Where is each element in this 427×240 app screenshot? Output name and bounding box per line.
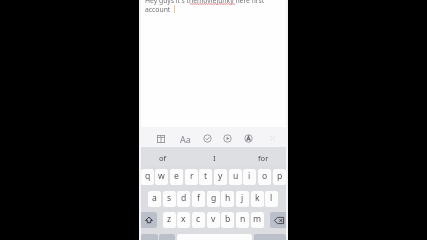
- button[interactable]: Play: [221, 132, 234, 145]
- button[interactable]: d: [177, 191, 190, 207]
- button[interactable]: u: [229, 169, 242, 185]
- button[interactable]: z: [163, 212, 176, 228]
- button[interactable]: Numbers: [141, 234, 158, 240]
- staticText: b: [225, 213, 231, 225]
- button[interactable]: r: [185, 169, 198, 185]
- button[interactable]: h: [221, 191, 234, 207]
- button[interactable]: o: [258, 169, 271, 185]
- button[interactable]: of: [147, 147, 179, 166]
- button[interactable]: j: [236, 191, 249, 207]
- staticText: z: [167, 213, 172, 225]
- button[interactable]: k: [251, 191, 264, 207]
- staticText: o: [262, 170, 268, 182]
- staticText: v: [211, 213, 216, 225]
- button[interactable]: Table: [154, 132, 167, 145]
- staticText: of: [159, 153, 167, 163]
- staticText: g: [211, 192, 217, 204]
- button[interactable]: f: [192, 191, 205, 207]
- staticText: e: [174, 170, 179, 182]
- button[interactable]: Emoji: [159, 234, 175, 240]
- button[interactable]: n: [236, 212, 249, 228]
- staticText: h: [225, 192, 231, 204]
- staticText: for: [258, 153, 269, 163]
- staticText: a: [152, 192, 157, 204]
- button[interactable]: Check: [201, 132, 214, 145]
- button[interactable]: m: [251, 212, 264, 228]
- staticText: r: [190, 170, 194, 182]
- staticText: account: [145, 5, 171, 14]
- button[interactable]: q: [141, 169, 154, 185]
- button[interactable]: g: [207, 191, 220, 207]
- button[interactable]: Backspace: [270, 212, 287, 228]
- staticText: m: [253, 213, 262, 225]
- staticText: Hey guys it's themoviejunky here first: [145, 0, 265, 5]
- button[interactable]: t: [199, 169, 212, 185]
- staticText: y: [218, 170, 223, 182]
- button[interactable]: for: [247, 147, 279, 166]
- staticText: u: [233, 170, 239, 182]
- button[interactable]: Aa: [179, 131, 191, 146]
- staticText: n: [240, 213, 246, 225]
- button[interactable]: c: [192, 212, 205, 228]
- staticText: c: [196, 213, 201, 225]
- staticText: f: [197, 192, 200, 204]
- button[interactable]: x: [177, 212, 190, 228]
- button[interactable]: l: [265, 191, 278, 207]
- staticText: q: [145, 170, 151, 182]
- staticText: l: [270, 192, 273, 204]
- button[interactable]: y: [214, 169, 227, 185]
- button[interactable]: i: [243, 169, 256, 185]
- button[interactable]: Annotate: [242, 132, 255, 145]
- staticText: I: [213, 153, 216, 163]
- staticText: t: [204, 170, 208, 182]
- staticText: w: [158, 170, 165, 182]
- staticText: Aa: [180, 133, 191, 145]
- staticText: j: [241, 192, 244, 204]
- staticText: p: [277, 170, 283, 182]
- button[interactable]: I: [198, 147, 230, 166]
- staticText: i: [248, 170, 251, 182]
- button[interactable]: Return: [254, 234, 286, 240]
- staticText: x: [181, 213, 186, 225]
- staticText: k: [255, 192, 260, 204]
- staticText: d: [181, 192, 187, 204]
- button[interactable]: e: [170, 169, 183, 185]
- staticText: s: [167, 192, 172, 204]
- button[interactable]: Shift: [140, 212, 157, 228]
- button[interactable]: v: [207, 212, 220, 228]
- button[interactable]: p: [273, 169, 286, 185]
- button[interactable]: b: [221, 212, 234, 228]
- button[interactable]: s: [163, 191, 176, 207]
- button[interactable]: w: [155, 169, 168, 185]
- button[interactable]: Close: [266, 132, 279, 145]
- button[interactable]: a: [148, 191, 161, 207]
